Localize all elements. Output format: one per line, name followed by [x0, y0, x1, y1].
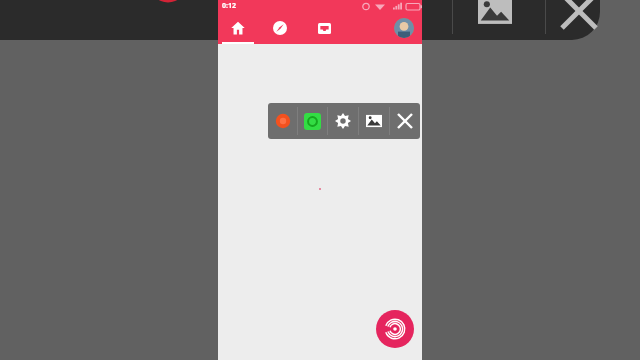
button[interactable]: Explore — [258, 12, 302, 44]
button[interactable]: Broadcast — [376, 310, 414, 348]
staticText: 0:12 — [222, 1, 236, 11]
button[interactable]: Inbox — [302, 12, 346, 44]
button[interactable]: Gallery — [359, 103, 389, 139]
button[interactable]: Profile — [394, 18, 414, 38]
button[interactable]: Close — [552, 0, 606, 38]
button[interactable]: Record — [268, 103, 297, 139]
button[interactable]: Home — [218, 12, 258, 44]
button[interactable]: Gallery — [470, 0, 520, 36]
button[interactable]: Close — [390, 103, 420, 139]
button[interactable]: Settings — [328, 103, 358, 139]
button[interactable]: Screenshot — [298, 103, 327, 139]
